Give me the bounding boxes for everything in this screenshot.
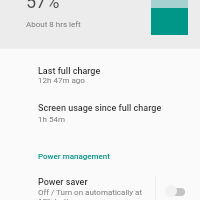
staticText: 1h 54m (38, 115, 65, 124)
staticText: Off / Turn on automatically at 15% batte… (38, 188, 156, 200)
button[interactable]: Screen usage since full charge (0, 103, 200, 136)
staticText: Last full charge (38, 66, 101, 77)
staticText: Screen usage since full charge (38, 103, 162, 114)
staticText: 57% (26, 0, 60, 12)
staticText: Power saver (38, 177, 88, 188)
staticText: About 8 hrs left (26, 20, 81, 29)
staticText: Power management (38, 152, 110, 161)
button[interactable]: Toggle power saver (156, 177, 200, 200)
button[interactable]: Power saver (0, 177, 155, 200)
button[interactable]: Last full charge (0, 66, 200, 99)
staticText: 12h 47m ago (38, 76, 85, 85)
